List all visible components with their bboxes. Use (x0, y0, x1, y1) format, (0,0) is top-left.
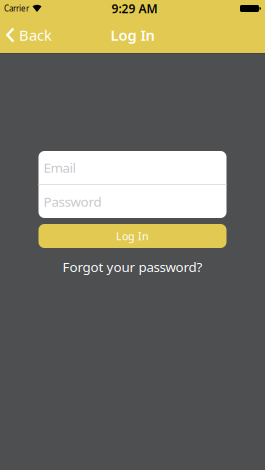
staticText: 9:29 AM (111, 0, 157, 16)
staticText: Forgot your password? (62, 258, 202, 276)
staticText: Log In (110, 25, 154, 45)
button[interactable]: Back (0, 25, 52, 45)
button[interactable]: Password (38, 185, 226, 218)
staticText: Log In (116, 229, 149, 243)
button[interactable]: Email (38, 151, 226, 184)
staticText: Password (43, 193, 101, 210)
button[interactable]: Forgot your password? (62, 258, 202, 276)
button[interactable]: Log In (38, 224, 226, 248)
staticText: Email (43, 159, 75, 176)
staticText: Carrier (4, 3, 29, 14)
staticText: Back (19, 25, 52, 45)
